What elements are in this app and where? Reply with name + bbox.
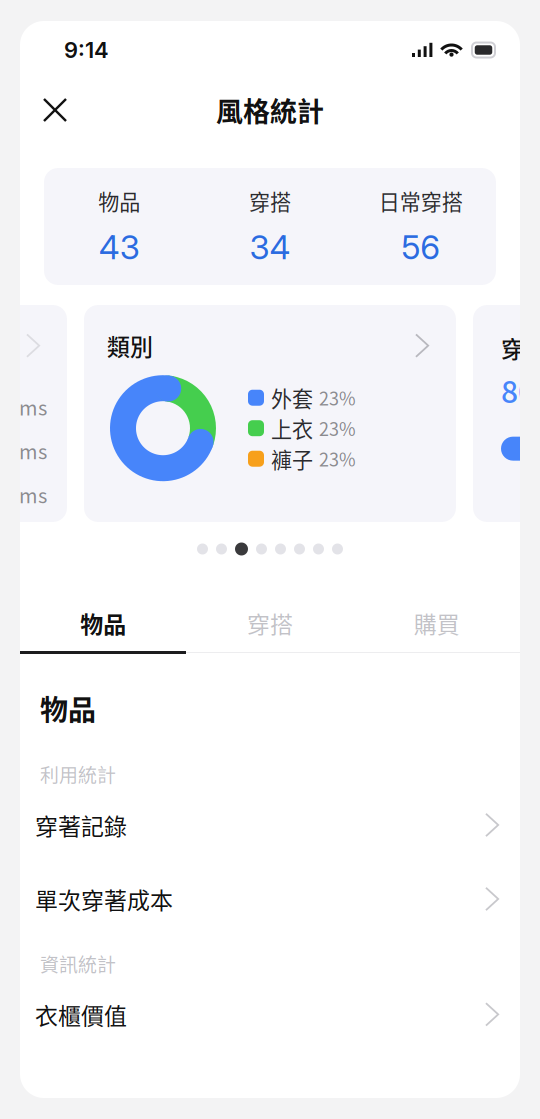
staticText: 日常穿搭 bbox=[379, 186, 463, 216]
button[interactable]: 類別 bbox=[84, 305, 456, 522]
button[interactable]: 物品 bbox=[44, 168, 195, 285]
staticText: 褲子 bbox=[271, 443, 313, 474]
staticText: 購買 bbox=[414, 606, 460, 640]
button[interactable]: 物品 bbox=[20, 595, 187, 651]
button[interactable]: 穿著記錄 bbox=[20, 788, 520, 862]
staticText: 80 bbox=[501, 368, 535, 412]
staticText: 單次穿著成本 bbox=[35, 882, 173, 916]
button[interactable]: 日常穿搭 bbox=[345, 168, 496, 285]
button[interactable]: 購買 bbox=[353, 595, 520, 651]
staticText: 穿搭次數 bbox=[501, 331, 540, 364]
staticText: 衣櫃價值 bbox=[35, 998, 127, 1031]
staticText: 9:14 bbox=[64, 37, 109, 63]
staticText: 23% bbox=[319, 385, 356, 411]
staticText: 穿搭 bbox=[247, 606, 293, 640]
button[interactable]: 衣櫃價值 bbox=[20, 977, 520, 1051]
staticText: 18 items bbox=[0, 436, 47, 465]
staticText: 穿著記錄 bbox=[35, 808, 127, 842]
button[interactable]: Close bbox=[34, 89, 76, 131]
staticText: 24 items bbox=[0, 392, 47, 421]
staticText: 11 items bbox=[0, 480, 47, 509]
staticText: 資訊統計 bbox=[40, 950, 116, 977]
button[interactable]: 穿搭 bbox=[195, 168, 345, 285]
staticText: 上衣 bbox=[271, 413, 313, 443]
staticText: 56 bbox=[401, 227, 440, 267]
staticText: 23% bbox=[319, 446, 356, 472]
staticText: 風格統計 bbox=[216, 90, 324, 129]
staticText: 穿搭 bbox=[249, 186, 291, 216]
staticText: 23% bbox=[319, 415, 356, 441]
staticText: 利用統計 bbox=[40, 760, 116, 788]
button[interactable]: 單次穿著成本 bbox=[20, 862, 520, 936]
staticText: 物品 bbox=[98, 186, 140, 216]
staticText: 物品 bbox=[40, 688, 96, 728]
staticText: 34 bbox=[249, 227, 290, 267]
button[interactable]: 穿搭 bbox=[187, 595, 353, 651]
staticText: 外套 bbox=[271, 382, 313, 413]
staticText: 物品 bbox=[80, 606, 126, 640]
staticText: 類別 bbox=[107, 329, 153, 362]
staticText: 43 bbox=[99, 227, 140, 267]
